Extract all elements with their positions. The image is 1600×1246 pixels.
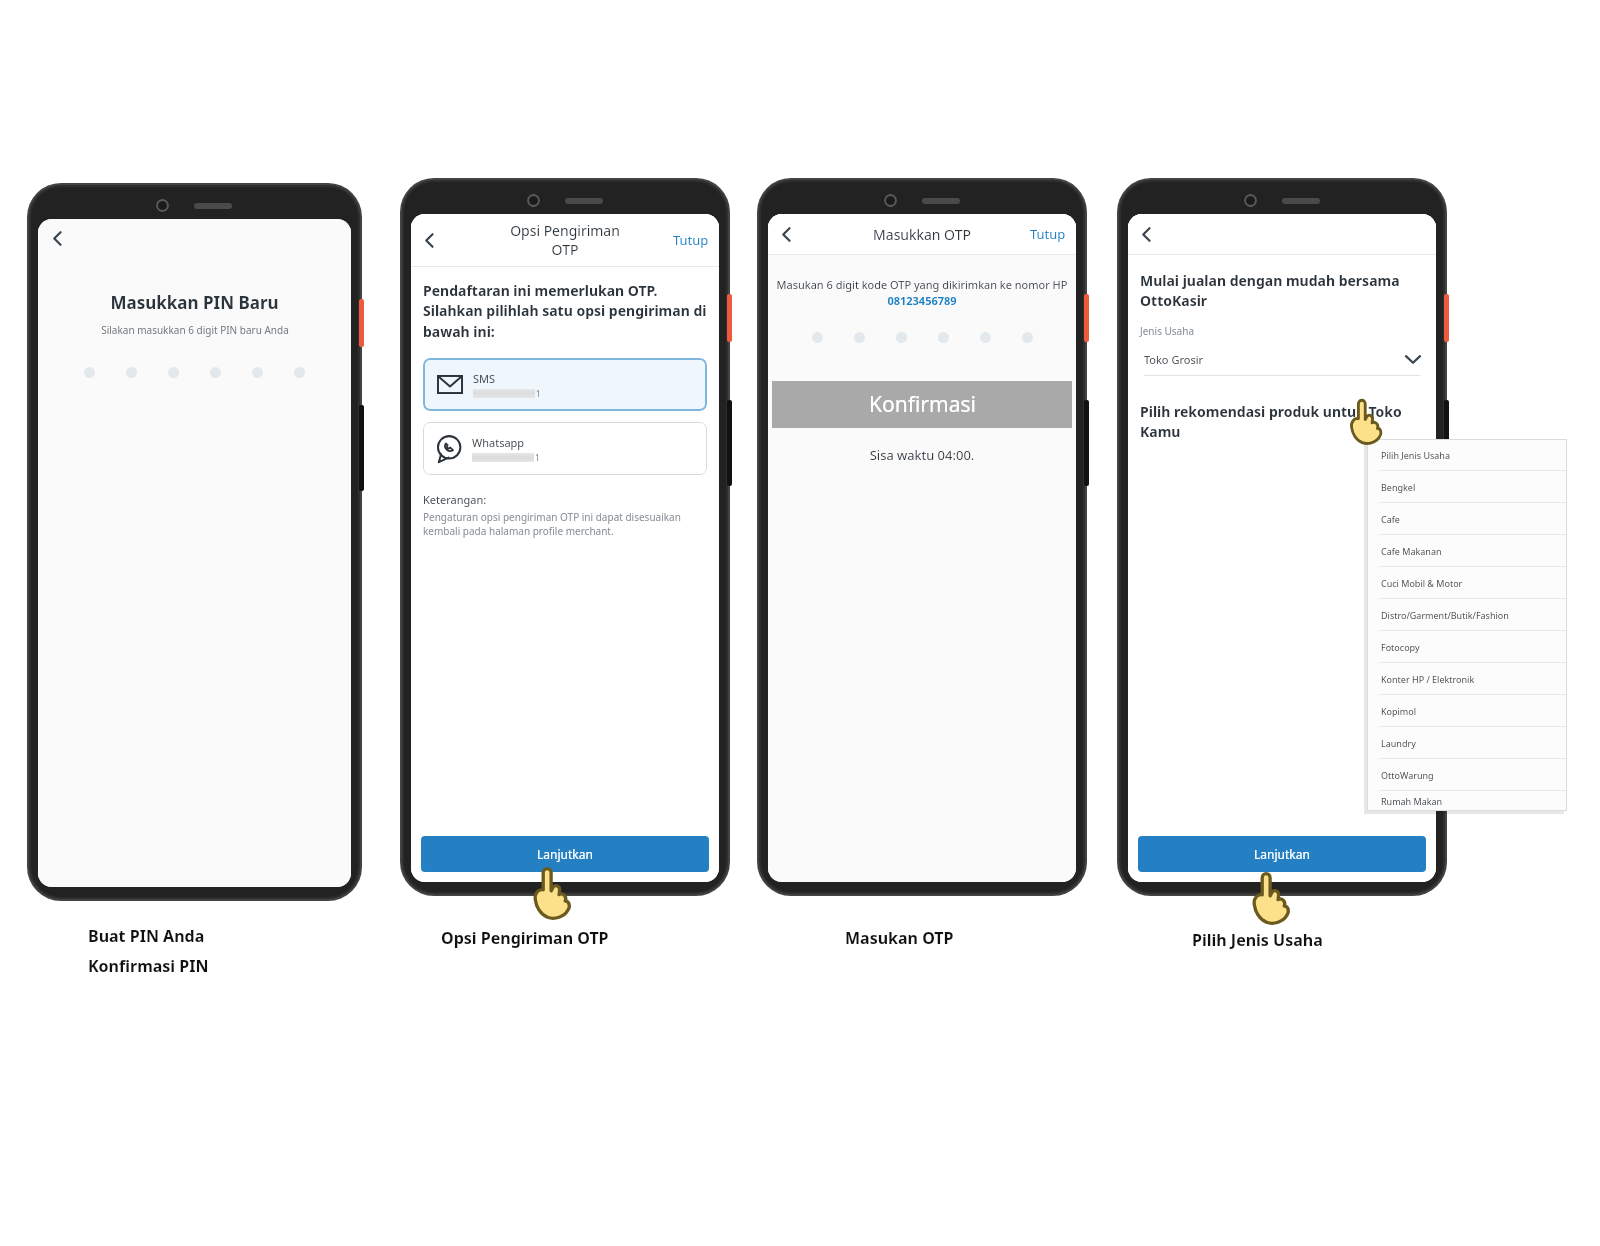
staticText: Pilih Jenis Usaha <box>1192 929 1323 951</box>
button[interactable]: Pilih Jenis Usaha <box>1367 439 1567 470</box>
button[interactable]: Konfirmasi <box>772 381 1072 428</box>
staticText: Keterangan: <box>423 492 487 507</box>
button[interactable]: Tutup <box>663 225 719 255</box>
button[interactable]: Lanjutkan <box>1138 836 1426 872</box>
button[interactable]: Kopimol <box>1367 695 1567 726</box>
staticText: Opsi Pengiriman OTP <box>465 221 665 259</box>
button[interactable]: Back <box>770 218 803 251</box>
button[interactable]: Cuci Mobil & Motor <box>1367 567 1567 598</box>
staticText: Buat PIN Anda <box>88 925 205 947</box>
button[interactable]: Cafe <box>1367 503 1567 534</box>
button[interactable]: Distro/Garment/Butik/Fashion <box>1367 599 1567 630</box>
staticText: Tutup <box>673 231 709 249</box>
button[interactable]: Konter HP / Elektronik <box>1367 663 1567 694</box>
staticText: Masukkan OTP <box>822 225 1022 244</box>
staticText: Opsi Pengiriman OTP <box>441 927 609 949</box>
staticText: Masukan OTP <box>845 927 954 949</box>
staticText: Pilih Jenis Usaha <box>1381 449 1450 461</box>
staticText: Rumah Makan <box>1381 795 1443 807</box>
staticText: Whatsapp <box>472 435 525 450</box>
staticText: Lanjutkan <box>1254 846 1310 862</box>
staticText: Pilih rekomendasi produk untuk Toko Kamu <box>1140 402 1424 442</box>
staticText: Cafe Makanan <box>1381 545 1442 557</box>
staticText: Bengkel <box>1381 481 1416 493</box>
staticText: Masukkan PIN Baru <box>110 291 279 314</box>
staticText: Sisa waktu 04:00. <box>768 446 1076 464</box>
staticText: Konfirmasi <box>869 390 976 419</box>
staticText: Cuci Mobil & Motor <box>1381 577 1463 589</box>
button[interactable]: Tutup <box>1020 219 1076 249</box>
button[interactable]: Laundry <box>1367 727 1567 758</box>
button[interactable]: Toko Grosir <box>1140 348 1424 370</box>
button[interactable]: Fotocopy <box>1367 631 1567 662</box>
staticText: Distro/Garment/Butik/Fashion <box>1381 609 1509 621</box>
staticText: Fotocopy <box>1381 641 1420 653</box>
staticText: Kopimol <box>1381 705 1417 717</box>
staticText: SMS <box>473 371 496 386</box>
staticText: Lanjutkan <box>537 846 593 862</box>
button[interactable]: Lanjutkan <box>421 836 709 872</box>
staticText: Toko Grosir <box>1144 352 1204 367</box>
staticText: Jenis Usaha <box>1140 324 1195 338</box>
button[interactable]: Back <box>1130 218 1163 251</box>
button[interactable]: OttoWarung <box>1367 759 1567 790</box>
staticText: 1 <box>536 388 541 399</box>
staticText: Cafe <box>1381 513 1400 525</box>
staticText: Pengaturan opsi pengiriman OTP ini dapat… <box>423 510 707 538</box>
staticText: Tutup <box>1030 225 1066 243</box>
staticText: 1 <box>535 452 540 463</box>
staticText: Laundry <box>1381 737 1416 749</box>
button[interactable]: Back <box>413 224 446 257</box>
button[interactable]: Whatsapp <box>423 422 707 475</box>
button[interactable]: SMS <box>423 358 707 411</box>
button[interactable]: Back <box>41 222 74 255</box>
button[interactable]: Bengkel <box>1367 471 1567 502</box>
staticText: Silakan masukkan 6 digit PIN baru Anda <box>101 323 289 337</box>
staticText: Konter HP / Elektronik <box>1381 673 1475 685</box>
button[interactable]: Rumah Makan <box>1367 791 1567 811</box>
staticText: Pendaftaran ini memerlukan OTP. Silahkan… <box>423 281 707 342</box>
staticText: Konfirmasi PIN <box>88 955 209 977</box>
button[interactable]: Cafe Makanan <box>1367 535 1567 566</box>
staticText: Masukan 6 digit kode OTP yang dikirimkan… <box>774 277 1070 308</box>
staticText: Mulai jualan dengan mudah bersama OttoKa… <box>1140 271 1424 311</box>
staticText: OttoWarung <box>1381 769 1434 781</box>
